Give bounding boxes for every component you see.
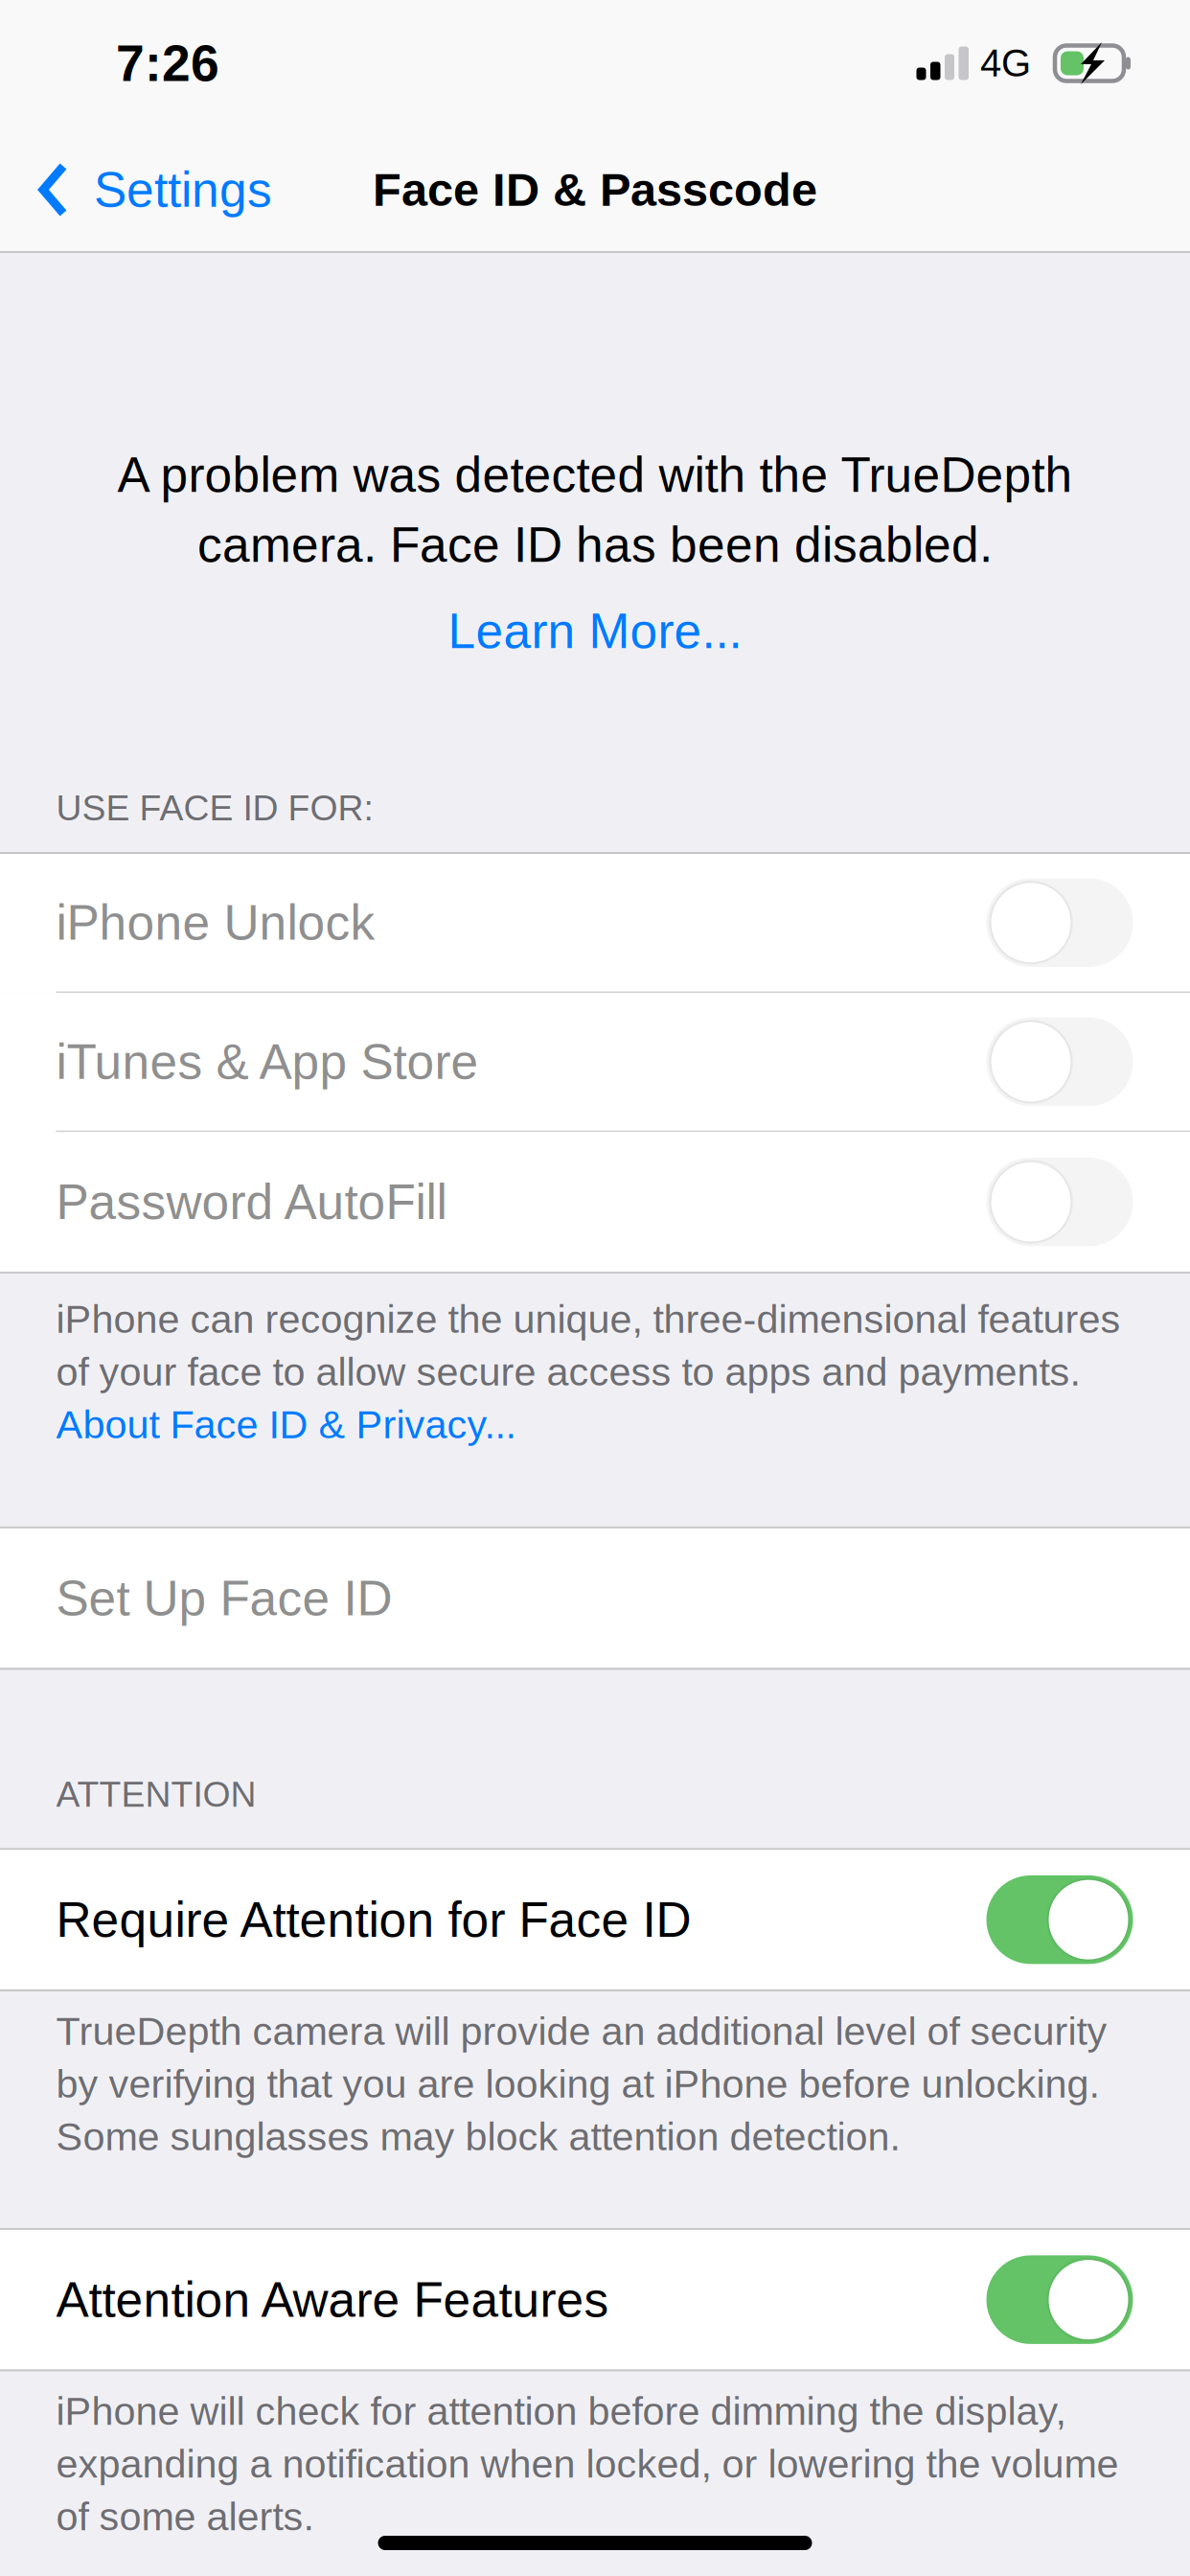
button[interactable]: iTunes & App Store — [0, 993, 1190, 1132]
staticText: Learn More... — [448, 604, 742, 658]
button[interactable]: Learn More... — [0, 596, 1190, 666]
staticText: by verifying that you are looking at iPh… — [56, 2062, 1099, 2106]
staticText: Set Up Face ID — [56, 1571, 392, 1626]
staticText: of some alerts. — [56, 2494, 314, 2539]
button[interactable]: Attention Aware Features — [0, 2230, 1190, 2369]
staticText: iPhone will check for attention before d… — [56, 2389, 1066, 2433]
button[interactable]: Settings — [0, 126, 295, 253]
staticText: 4G — [980, 42, 1031, 85]
staticText: iTunes & App Store — [56, 1034, 479, 1089]
staticText: About Face ID & Privacy... — [56, 1402, 516, 1447]
button[interactable]: About Face ID & Privacy... — [56, 1398, 1190, 1451]
staticText: Some sunglasses may block attention dete… — [56, 2114, 900, 2159]
staticText: iPhone can recognize the unique, three-d… — [56, 1297, 1121, 1341]
staticText: Require Attention for Face ID — [56, 1892, 691, 1947]
staticText: iPhone Unlock — [56, 895, 375, 950]
button[interactable]: iPhone Unlock — [0, 854, 1190, 993]
button[interactable]: Require Attention for Face ID — [0, 1850, 1190, 1989]
button[interactable]: Password AutoFill — [0, 1132, 1190, 1272]
staticText: A problem was detected with the TrueDept… — [117, 447, 1073, 502]
staticText: Settings — [94, 162, 272, 217]
staticText: Attention Aware Features — [56, 2272, 609, 2327]
staticText: Face ID & Passcode — [373, 164, 817, 216]
staticText: expanding a notification when locked, or… — [56, 2442, 1119, 2486]
staticText: USE FACE ID FOR: — [56, 788, 373, 828]
staticText: ATTENTION — [56, 1774, 256, 1814]
staticText: of your face to allow secure access to a… — [56, 1350, 1080, 1394]
staticText: 7:26 — [116, 35, 219, 92]
staticText: camera. Face ID has been disabled. — [197, 517, 993, 572]
staticText: Password AutoFill — [56, 1174, 447, 1229]
button[interactable]: Set Up Face ID — [0, 1528, 1190, 1668]
staticText: TrueDepth camera will provide an additio… — [56, 2009, 1107, 2053]
